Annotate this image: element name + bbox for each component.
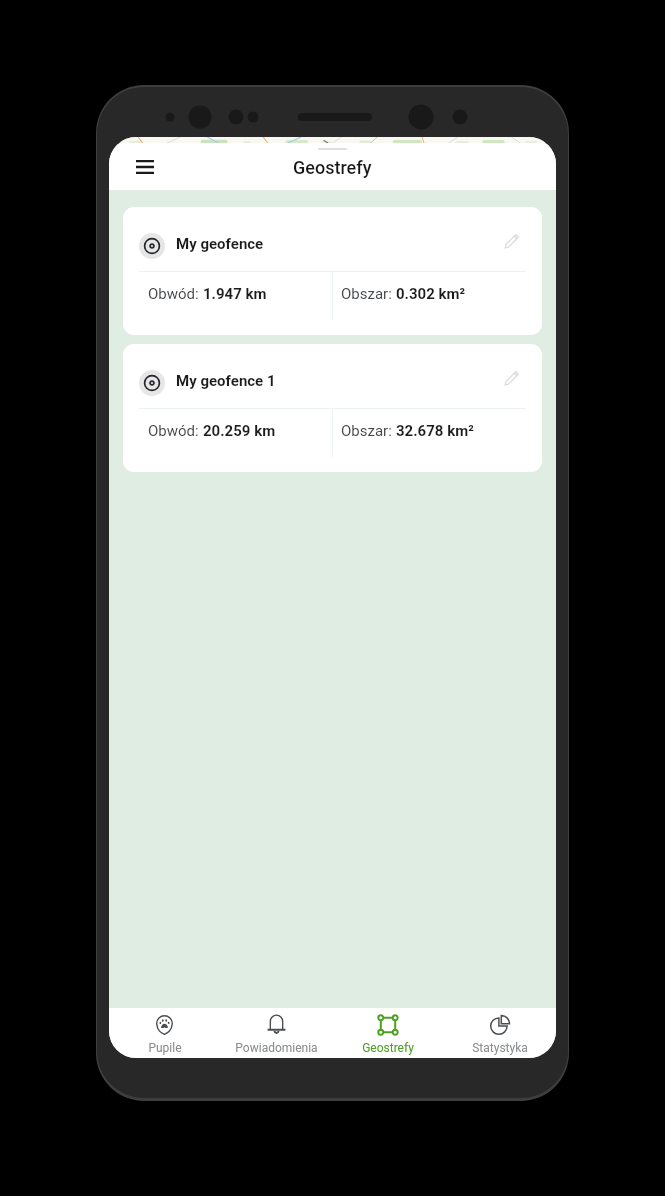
staticText: Obszar:: [341, 285, 396, 303]
staticText: Geostrefy: [293, 157, 372, 178]
staticText: Pupile: [148, 1041, 182, 1055]
staticText: My geofence 1: [176, 372, 276, 390]
staticText: Obwód:: [148, 285, 203, 303]
staticText: My geofence: [176, 235, 264, 253]
staticText: 20.259 km: [203, 422, 276, 440]
staticText: Geostrefy: [362, 1041, 414, 1055]
button[interactable]: Menu: [128, 150, 162, 184]
button[interactable]: My geofence: [123, 207, 542, 335]
button[interactable]: Geostrefy: [332, 1008, 444, 1058]
button[interactable]: Statystyka: [444, 1008, 556, 1058]
button[interactable]: Powiadomienia: [220, 1008, 332, 1058]
staticText: 32.678 km²: [396, 422, 474, 440]
button[interactable]: Edit: [497, 226, 527, 256]
staticText: 1.947 km: [203, 285, 267, 303]
staticText: Statystyka: [472, 1041, 528, 1055]
staticText: Obwód:: [148, 422, 203, 440]
button[interactable]: Pupile: [109, 1008, 220, 1058]
staticText: 0.302 km²: [396, 285, 466, 303]
button[interactable]: My geofence 1: [123, 344, 542, 472]
staticText: Powiadomienia: [235, 1041, 318, 1055]
staticText: Obszar:: [341, 422, 396, 440]
button[interactable]: Edit: [497, 363, 527, 393]
